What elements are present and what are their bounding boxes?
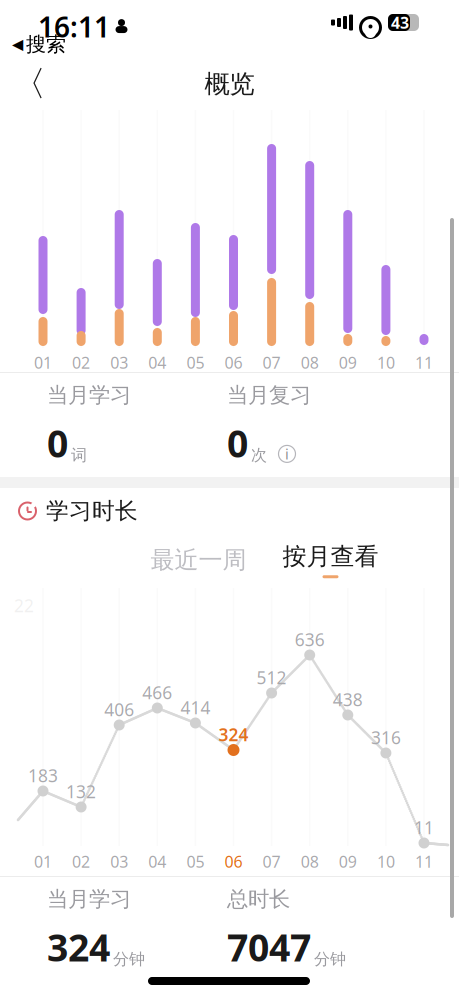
- staticText: 466: [142, 681, 172, 704]
- staticText: 11: [414, 816, 434, 839]
- staticText: 07: [263, 851, 281, 872]
- staticText: 04: [148, 851, 166, 872]
- staticText: 324: [218, 723, 248, 746]
- staticText: ◀: [12, 36, 23, 53]
- staticText: 636: [295, 628, 325, 651]
- staticText: 次: [251, 445, 267, 465]
- staticText: 分钟: [113, 949, 145, 969]
- staticText: 16:11: [38, 8, 110, 45]
- staticText: 〈: [11, 63, 46, 105]
- button[interactable]: 最近一周: [132, 537, 264, 583]
- staticText: 438: [333, 688, 363, 711]
- staticText: 0: [227, 418, 248, 468]
- staticText: 最近一周: [150, 545, 246, 575]
- staticText: 0: [47, 418, 68, 468]
- staticText: 05: [186, 851, 204, 872]
- staticText: 406: [104, 698, 134, 721]
- staticText: 总时长: [227, 886, 290, 912]
- staticText: 43: [391, 12, 409, 33]
- staticText: i: [285, 444, 289, 464]
- staticText: 08: [301, 352, 319, 373]
- staticText: 02: [72, 352, 90, 373]
- staticText: 10: [377, 851, 395, 872]
- staticText: 分钟: [314, 949, 346, 969]
- staticText: 132: [66, 780, 96, 803]
- staticText: 09: [339, 851, 357, 872]
- staticText: 316: [371, 726, 401, 749]
- staticText: 01: [34, 851, 52, 872]
- staticText: 7047: [227, 922, 311, 972]
- staticText: 01: [34, 352, 52, 373]
- staticText: 07: [263, 352, 281, 373]
- staticText: 22: [14, 594, 34, 617]
- staticText: 04: [148, 352, 166, 373]
- staticText: 概览: [204, 68, 254, 99]
- staticText: 搜索: [26, 32, 66, 57]
- staticText: 11: [415, 352, 433, 373]
- staticText: 08: [301, 851, 319, 872]
- staticText: 02: [72, 851, 90, 872]
- staticText: 当月复习: [227, 382, 311, 408]
- staticText: 06: [224, 352, 242, 373]
- staticText: 当月学习: [47, 886, 131, 912]
- button[interactable]: 按月查看: [264, 537, 396, 583]
- staticText: 05: [186, 352, 204, 373]
- staticText: 414: [180, 696, 210, 719]
- button[interactable]: 返回: [7, 62, 51, 106]
- staticText: 词: [71, 445, 87, 465]
- staticText: 按月查看: [282, 542, 378, 571]
- staticText: 03: [110, 352, 128, 373]
- staticText: 183: [28, 764, 58, 787]
- staticText: 512: [257, 666, 287, 689]
- staticText: 06: [224, 851, 242, 872]
- staticText: 03: [110, 851, 128, 872]
- staticText: 学习时长: [46, 497, 138, 525]
- button[interactable]: 说明: [274, 441, 300, 467]
- staticText: 10: [377, 352, 395, 373]
- staticText: 09: [339, 352, 357, 373]
- staticText: 324: [47, 922, 110, 972]
- staticText: 当月学习: [47, 382, 131, 408]
- staticText: 11: [415, 851, 433, 872]
